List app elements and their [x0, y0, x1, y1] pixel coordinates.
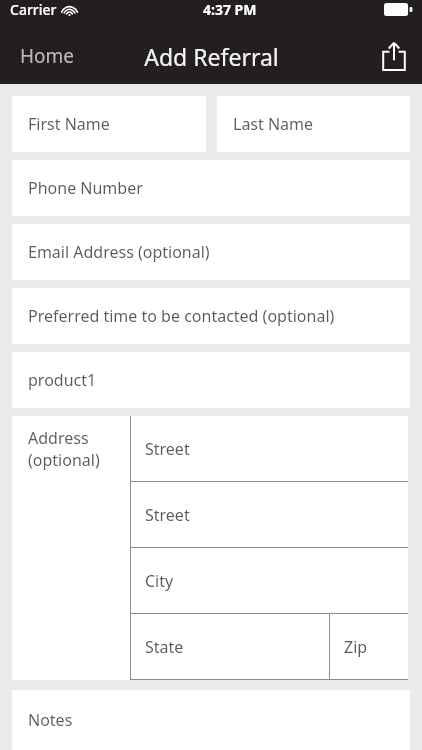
staticText: Preferred time to be contacted (optional…: [28, 305, 335, 327]
staticText: Notes: [28, 709, 73, 731]
button[interactable]: product1: [12, 352, 410, 408]
staticText: Phone Number: [28, 177, 143, 199]
staticText: City: [145, 570, 174, 592]
button[interactable]: First Name: [12, 96, 206, 152]
staticText: Home: [20, 43, 75, 69]
button[interactable]: Street: [131, 416, 408, 481]
staticText: Add Referral: [144, 41, 279, 72]
button[interactable]: Last Name: [217, 96, 410, 152]
button[interactable]: Zip: [330, 614, 408, 679]
staticText: First Name: [28, 113, 110, 135]
staticText: Address: [28, 427, 89, 449]
button[interactable]: Email Address (optional): [12, 224, 410, 280]
button[interactable]: Address: [12, 416, 130, 482]
staticText: Last Name: [233, 113, 314, 135]
button[interactable]: Preferred time to be contacted (optional…: [12, 288, 410, 344]
button[interactable]: Share: [366, 28, 422, 84]
staticText: Zip: [344, 636, 368, 658]
staticText: Street: [145, 504, 190, 526]
button[interactable]: Street: [131, 482, 408, 547]
button[interactable]: Home: [0, 28, 95, 84]
staticText: Email Address (optional): [28, 241, 210, 263]
button[interactable]: Phone Number: [12, 160, 410, 216]
button[interactable]: City: [131, 548, 408, 613]
staticText: (optional): [28, 449, 100, 471]
staticText: Carrier: [10, 0, 57, 19]
button[interactable]: State: [131, 614, 329, 679]
staticText: State: [145, 636, 184, 658]
button[interactable]: Notes: [12, 690, 410, 750]
staticText: product1: [28, 369, 97, 391]
staticText: Street: [145, 438, 190, 460]
staticText: 4:37 PM: [203, 0, 257, 19]
